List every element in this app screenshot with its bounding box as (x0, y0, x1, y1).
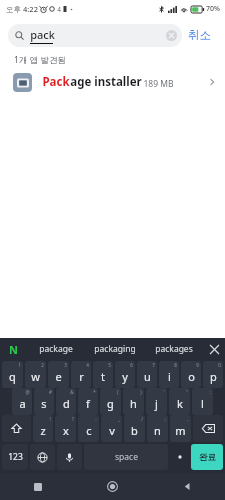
staticText: * (93, 389, 96, 395)
staticText: 7 (152, 362, 155, 368)
button[interactable]: - (78, 415, 99, 442)
staticText: 0 (218, 362, 221, 368)
staticText: 오후 4:22 (6, 4, 38, 14)
button[interactable]: packaging (85, 338, 144, 360)
staticText: N (9, 342, 18, 357)
button[interactable]: Clear query (166, 30, 177, 41)
button[interactable]: / (124, 415, 145, 442)
staticText: f (86, 396, 90, 411)
button[interactable]: 6 (115, 361, 135, 388)
button[interactable]: Pack (0, 66, 225, 98)
button[interactable]: Voice input (57, 444, 82, 470)
staticText: ( (117, 389, 119, 395)
button[interactable]: 2 (25, 361, 46, 388)
staticText: e (55, 369, 62, 384)
button[interactable]: packages (144, 338, 203, 360)
button[interactable]: 1 (2, 361, 23, 388)
button[interactable]: 4 (71, 361, 91, 388)
staticText: package (39, 343, 73, 355)
button[interactable]: Home (75, 473, 150, 500)
staticText: r (79, 369, 84, 384)
staticText: # (49, 389, 52, 395)
staticText: 완료 (199, 452, 216, 463)
staticText: 5 (108, 362, 111, 368)
staticText: s (41, 396, 47, 411)
staticText: 4 (86, 362, 89, 368)
button[interactable]: _ (101, 415, 122, 442)
staticText: / (141, 416, 143, 422)
staticText: space (115, 451, 138, 463)
staticText: 70% (206, 4, 220, 14)
staticText: " (186, 389, 188, 395)
staticText: x (63, 423, 69, 438)
staticText: u (144, 369, 151, 384)
staticText: l (201, 396, 204, 411)
button[interactable]: 7 (137, 361, 157, 388)
staticText: o (188, 369, 195, 384)
button[interactable]: : (192, 388, 213, 415)
button[interactable]: ( (100, 388, 121, 415)
button[interactable]: Close suggestions (203, 338, 225, 360)
staticText: , (187, 416, 189, 422)
button[interactable]: Shift (2, 415, 31, 442)
staticText: - (95, 416, 97, 422)
staticText: k (177, 396, 183, 411)
staticText: d (63, 396, 70, 411)
button[interactable]: Backspace (193, 415, 223, 442)
staticText: : (209, 389, 211, 395)
staticText: 취소 (188, 28, 211, 42)
button[interactable]: Recents (0, 473, 75, 500)
staticText: 9 (196, 362, 199, 368)
button[interactable]: Numbers (2, 444, 28, 470)
staticText: ' (163, 389, 165, 395)
staticText: packages (155, 343, 193, 355)
button[interactable]: # (34, 388, 54, 415)
button[interactable]: 5 (93, 361, 113, 388)
button[interactable]: , (170, 415, 191, 442)
staticText: 6 (130, 362, 133, 368)
button[interactable]: space (84, 444, 168, 470)
button[interactable]: Change language (30, 444, 55, 470)
staticText: z (40, 423, 46, 438)
staticText: c (86, 423, 92, 438)
staticText: h (130, 396, 137, 411)
button[interactable]: Back (150, 473, 225, 500)
button[interactable]: 취소 (182, 24, 217, 46)
button[interactable]: ' (146, 388, 167, 415)
button[interactable]: Period (170, 444, 189, 470)
button[interactable]: 완료 (191, 444, 223, 470)
staticText: g (107, 396, 114, 411)
staticText: j (155, 396, 158, 411)
button[interactable]: * (78, 388, 98, 415)
staticText: q (9, 369, 16, 384)
button[interactable]: & (56, 388, 76, 415)
button[interactable]: pack (8, 24, 182, 47)
staticText: @ (25, 389, 30, 395)
button[interactable]: ; (147, 415, 168, 442)
button[interactable]: @ (12, 388, 32, 415)
button[interactable]: 0 (203, 361, 223, 388)
staticText: 8 (174, 362, 177, 368)
staticText: 2 (41, 362, 44, 368)
staticText: i (168, 369, 171, 384)
button[interactable]: package (26, 338, 85, 360)
button[interactable]: ! (33, 415, 53, 442)
staticText: 4 (57, 5, 61, 14)
staticText: _ (118, 416, 120, 422)
button[interactable]: ) (123, 388, 144, 415)
staticText: v (109, 423, 115, 438)
button[interactable]: " (169, 388, 190, 415)
staticText: age installer (70, 74, 142, 90)
staticText: & (70, 389, 74, 395)
staticText: y (122, 369, 128, 384)
button[interactable]: 8 (159, 361, 179, 388)
staticText: ; (164, 416, 166, 422)
staticText: a (19, 396, 26, 411)
staticText: 189 MB (143, 78, 174, 90)
button[interactable]: ? (55, 415, 76, 442)
button[interactable]: Naver search (0, 338, 26, 360)
button[interactable]: 3 (48, 361, 69, 388)
staticText: ! (49, 416, 51, 422)
staticText: 1개 앱 발견됨 (14, 54, 66, 66)
button[interactable]: 9 (181, 361, 201, 388)
